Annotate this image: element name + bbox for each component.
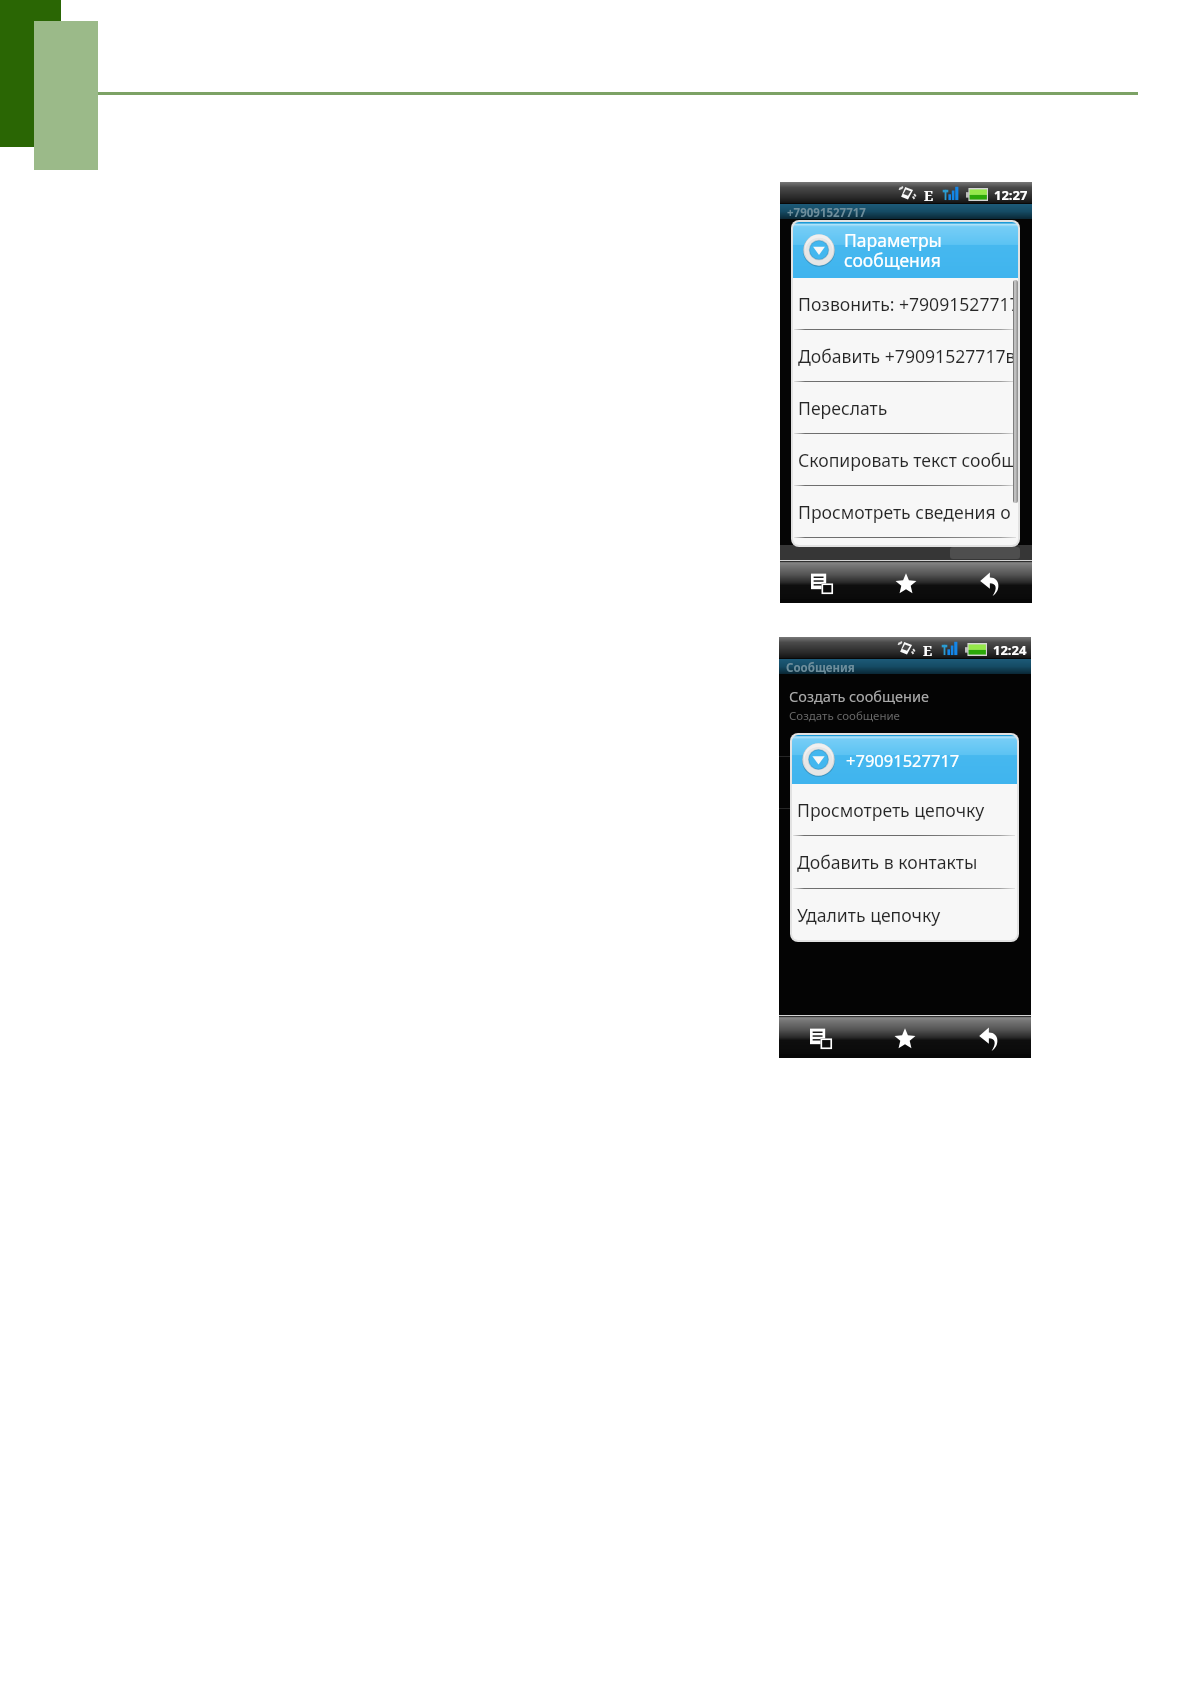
button[interactable]: Favorites (863, 1019, 947, 1058)
staticText: E (924, 186, 934, 205)
button[interactable]: Переслать (793, 382, 1018, 433)
button[interactable]: Параметры сообщения (793, 222, 1018, 278)
button[interactable]: Back (947, 1019, 1031, 1058)
button[interactable]: +79091527717 (792, 735, 1017, 784)
button[interactable]: Messages (779, 1019, 863, 1058)
button[interactable]: Просмотреть цепочку (792, 784, 1017, 835)
button[interactable]: Favorites (864, 564, 948, 603)
button[interactable]: Позвонить: +79091527717 (793, 278, 1018, 329)
staticText: Просмотреть цепочку (797, 798, 985, 822)
button[interactable]: Просмотреть сведения о (793, 486, 1018, 537)
staticText: +79091527717 (787, 205, 866, 220)
staticText: Переслать (798, 396, 888, 420)
staticText: Позвонить: +79091527717 (798, 292, 1018, 316)
button[interactable]: Удалить цепочку (792, 889, 1017, 940)
button[interactable]: Добавить +79091527717в (793, 330, 1018, 381)
staticText: Удалить цепочку (797, 903, 941, 927)
staticText: Создать сообщение (789, 708, 900, 724)
staticText: Добавить +79091527717в (798, 344, 1016, 368)
button[interactable]: Back (948, 564, 1032, 603)
staticText: 12:24 (993, 641, 1027, 659)
button[interactable]: Messages (780, 564, 864, 603)
staticText: +79091527717 (846, 749, 960, 771)
staticText: Просмотреть сведения о (798, 500, 1011, 524)
staticText: Скопировать текст сообщ (798, 448, 1018, 472)
button[interactable]: Скопировать текст сообщ (793, 434, 1018, 485)
staticText: 12:27 (994, 186, 1028, 204)
staticText: Сообщения (786, 660, 855, 675)
staticText: Параметры сообщения (844, 228, 942, 273)
staticText: E (923, 641, 933, 660)
staticText: Создать сообщение (789, 686, 929, 706)
staticText: Добавить в контакты (797, 850, 978, 874)
button[interactable]: Добавить в контакты (792, 836, 1017, 888)
